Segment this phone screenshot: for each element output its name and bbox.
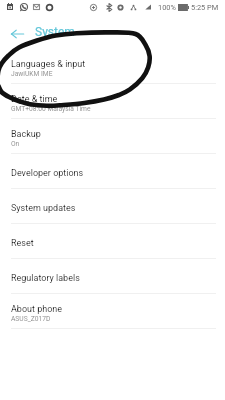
staticText: Date & time (11, 94, 58, 105)
button[interactable]: System updates (0, 189, 225, 224)
staticText: Languages & input (11, 59, 86, 70)
staticText: JawiUKM IME (11, 70, 53, 78)
staticText: 5:25 PM (191, 3, 219, 12)
staticText: GMT+08:00 Malaysia Time (11, 105, 91, 113)
staticText: About phone (11, 304, 63, 315)
staticText: 100% (158, 3, 176, 12)
button[interactable]: Languages & input (0, 49, 225, 84)
button[interactable]: Reset (0, 224, 225, 259)
staticText: System (35, 25, 75, 39)
button[interactable]: Developer options (0, 154, 225, 189)
staticText: On (11, 140, 20, 148)
staticText: Reset (11, 238, 34, 249)
button[interactable]: Backup (0, 119, 225, 154)
button[interactable]: Date & time (0, 84, 225, 119)
staticText: System updates (11, 203, 76, 214)
staticText: Developer options (11, 168, 84, 179)
button[interactable]: About phone (0, 294, 225, 329)
staticText: Backup (11, 129, 41, 140)
button[interactable]: Regulatory labels (0, 259, 225, 294)
staticText: ASUS_Z017D (11, 315, 51, 323)
button[interactable]: Back (0, 14, 35, 49)
staticText: Regulatory labels (11, 273, 80, 284)
